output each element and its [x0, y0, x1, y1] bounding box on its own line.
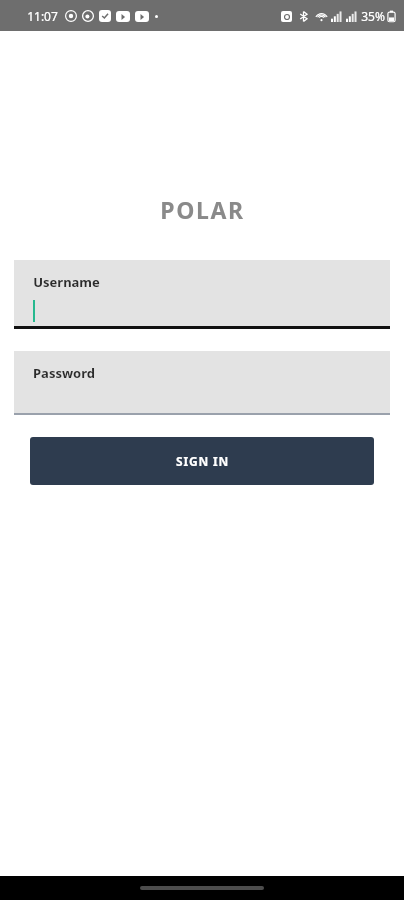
staticText: Username: [33, 273, 100, 291]
button[interactable]: Username: [14, 260, 390, 329]
staticText: POLAR: [160, 194, 245, 225]
staticText: 11:07: [27, 8, 58, 24]
button[interactable]: Password: [14, 351, 390, 415]
staticText: Password: [33, 364, 95, 382]
button[interactable]: SIGN IN: [30, 437, 374, 485]
staticText: 35%: [361, 8, 385, 24]
other: Home gesture: [140, 886, 264, 890]
staticText: SIGN IN: [176, 453, 229, 469]
